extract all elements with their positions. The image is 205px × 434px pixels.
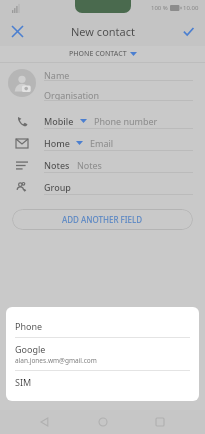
button[interactable]: Home: [0, 132, 205, 154]
button[interactable]: Add photo: [8, 69, 36, 97]
staticText: ADD ANOTHER FIELD: [62, 214, 143, 225]
staticText: Phone: [15, 320, 43, 332]
button[interactable]: Group: [0, 176, 205, 198]
button[interactable]: Organisation: [44, 89, 193, 101]
button[interactable]: Notes: [0, 154, 205, 176]
staticText: New contact: [71, 24, 135, 39]
staticText: Mobile: [44, 115, 74, 127]
staticText: Phone number: [94, 115, 158, 127]
button[interactable]: Cancel: [4, 18, 30, 44]
staticText: Group: [44, 181, 71, 193]
staticText: Organisation: [44, 89, 100, 100]
staticText: Home: [44, 137, 70, 149]
staticText: alan.jones.wm@gmail.com: [15, 356, 97, 365]
staticText: 100 %: [151, 4, 168, 12]
button[interactable]: Name: [44, 69, 193, 81]
button[interactable]: Home: [90, 410, 116, 434]
button[interactable]: Back: [32, 410, 58, 434]
button[interactable]: Save contact: [175, 18, 201, 44]
button[interactable]: ADD ANOTHER FIELD: [12, 209, 193, 230]
button[interactable]: Recents: [147, 410, 173, 434]
staticText: Notes: [77, 159, 102, 171]
staticText: Name: [44, 69, 70, 80]
staticText: 10.00: [183, 4, 199, 12]
button[interactable]: Google: [6, 338, 199, 370]
staticText: SIM: [15, 376, 32, 388]
button[interactable]: PHONE CONTACT: [0, 46, 205, 62]
button[interactable]: SIM: [6, 371, 199, 393]
staticText: PHONE CONTACT: [69, 49, 127, 59]
button[interactable]: Mobile: [0, 110, 205, 132]
button[interactable]: Phone: [6, 315, 199, 337]
staticText: Google: [15, 343, 46, 355]
staticText: Notes: [44, 159, 70, 171]
staticText: Email: [90, 137, 114, 149]
